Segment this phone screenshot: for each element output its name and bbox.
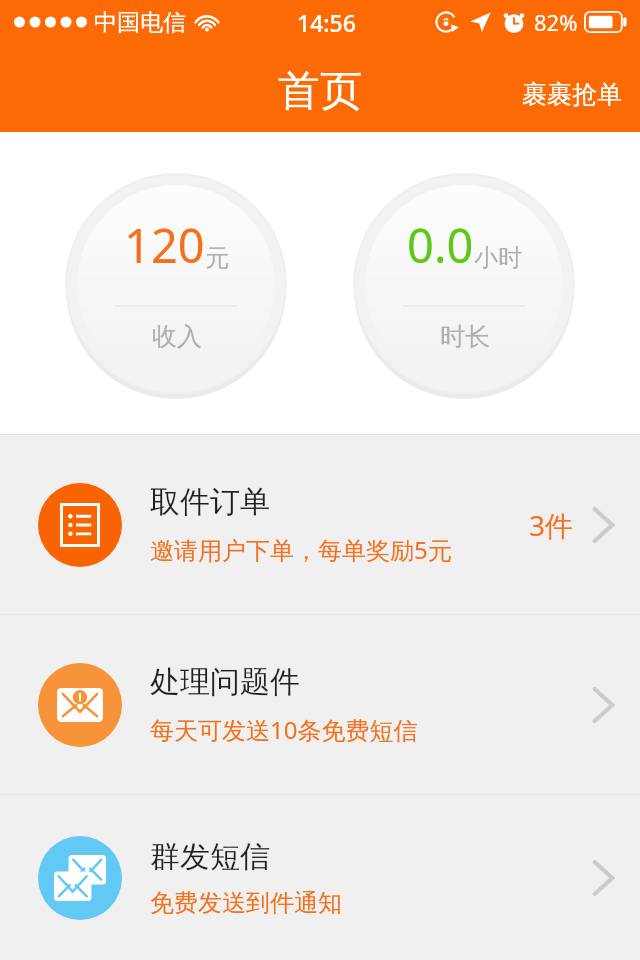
button[interactable]: 群发短信 bbox=[0, 795, 640, 960]
staticText: 邀请用户下单，每单奖励5元 bbox=[150, 533, 452, 566]
staticText: 0.0 bbox=[407, 213, 474, 277]
staticText: 取件订单 bbox=[150, 483, 270, 521]
staticText: 首页 bbox=[278, 65, 362, 118]
staticText: 中国电信 bbox=[94, 8, 186, 37]
staticText: 14:56 bbox=[297, 7, 356, 38]
button[interactable]: 取件订单 bbox=[0, 435, 640, 614]
staticText: 收入 bbox=[152, 321, 202, 352]
button[interactable]: 120 bbox=[64, 172, 288, 396]
staticText: 3件 bbox=[529, 506, 574, 544]
staticText: 每天可发送10条免费短信 bbox=[150, 713, 418, 746]
staticText: 小时 bbox=[474, 243, 522, 273]
other: 打开 bbox=[592, 859, 614, 897]
button[interactable]: 0.0 bbox=[352, 172, 576, 396]
button[interactable]: 裹裹抢单 bbox=[504, 69, 640, 132]
other: 打开 bbox=[592, 686, 614, 724]
staticText: 元 bbox=[205, 243, 229, 273]
staticText: 群发短信 bbox=[150, 838, 270, 876]
staticText: 时长 bbox=[440, 321, 490, 352]
staticText: 免费发送到件通知 bbox=[150, 888, 342, 918]
staticText: 处理问题件 bbox=[150, 663, 300, 701]
staticText: 82% bbox=[534, 7, 578, 37]
button[interactable]: 处理问题件 bbox=[0, 615, 640, 794]
staticText: 120 bbox=[124, 213, 205, 277]
staticText: 裹裹抢单 bbox=[522, 79, 622, 110]
other: 打开 bbox=[592, 506, 614, 544]
